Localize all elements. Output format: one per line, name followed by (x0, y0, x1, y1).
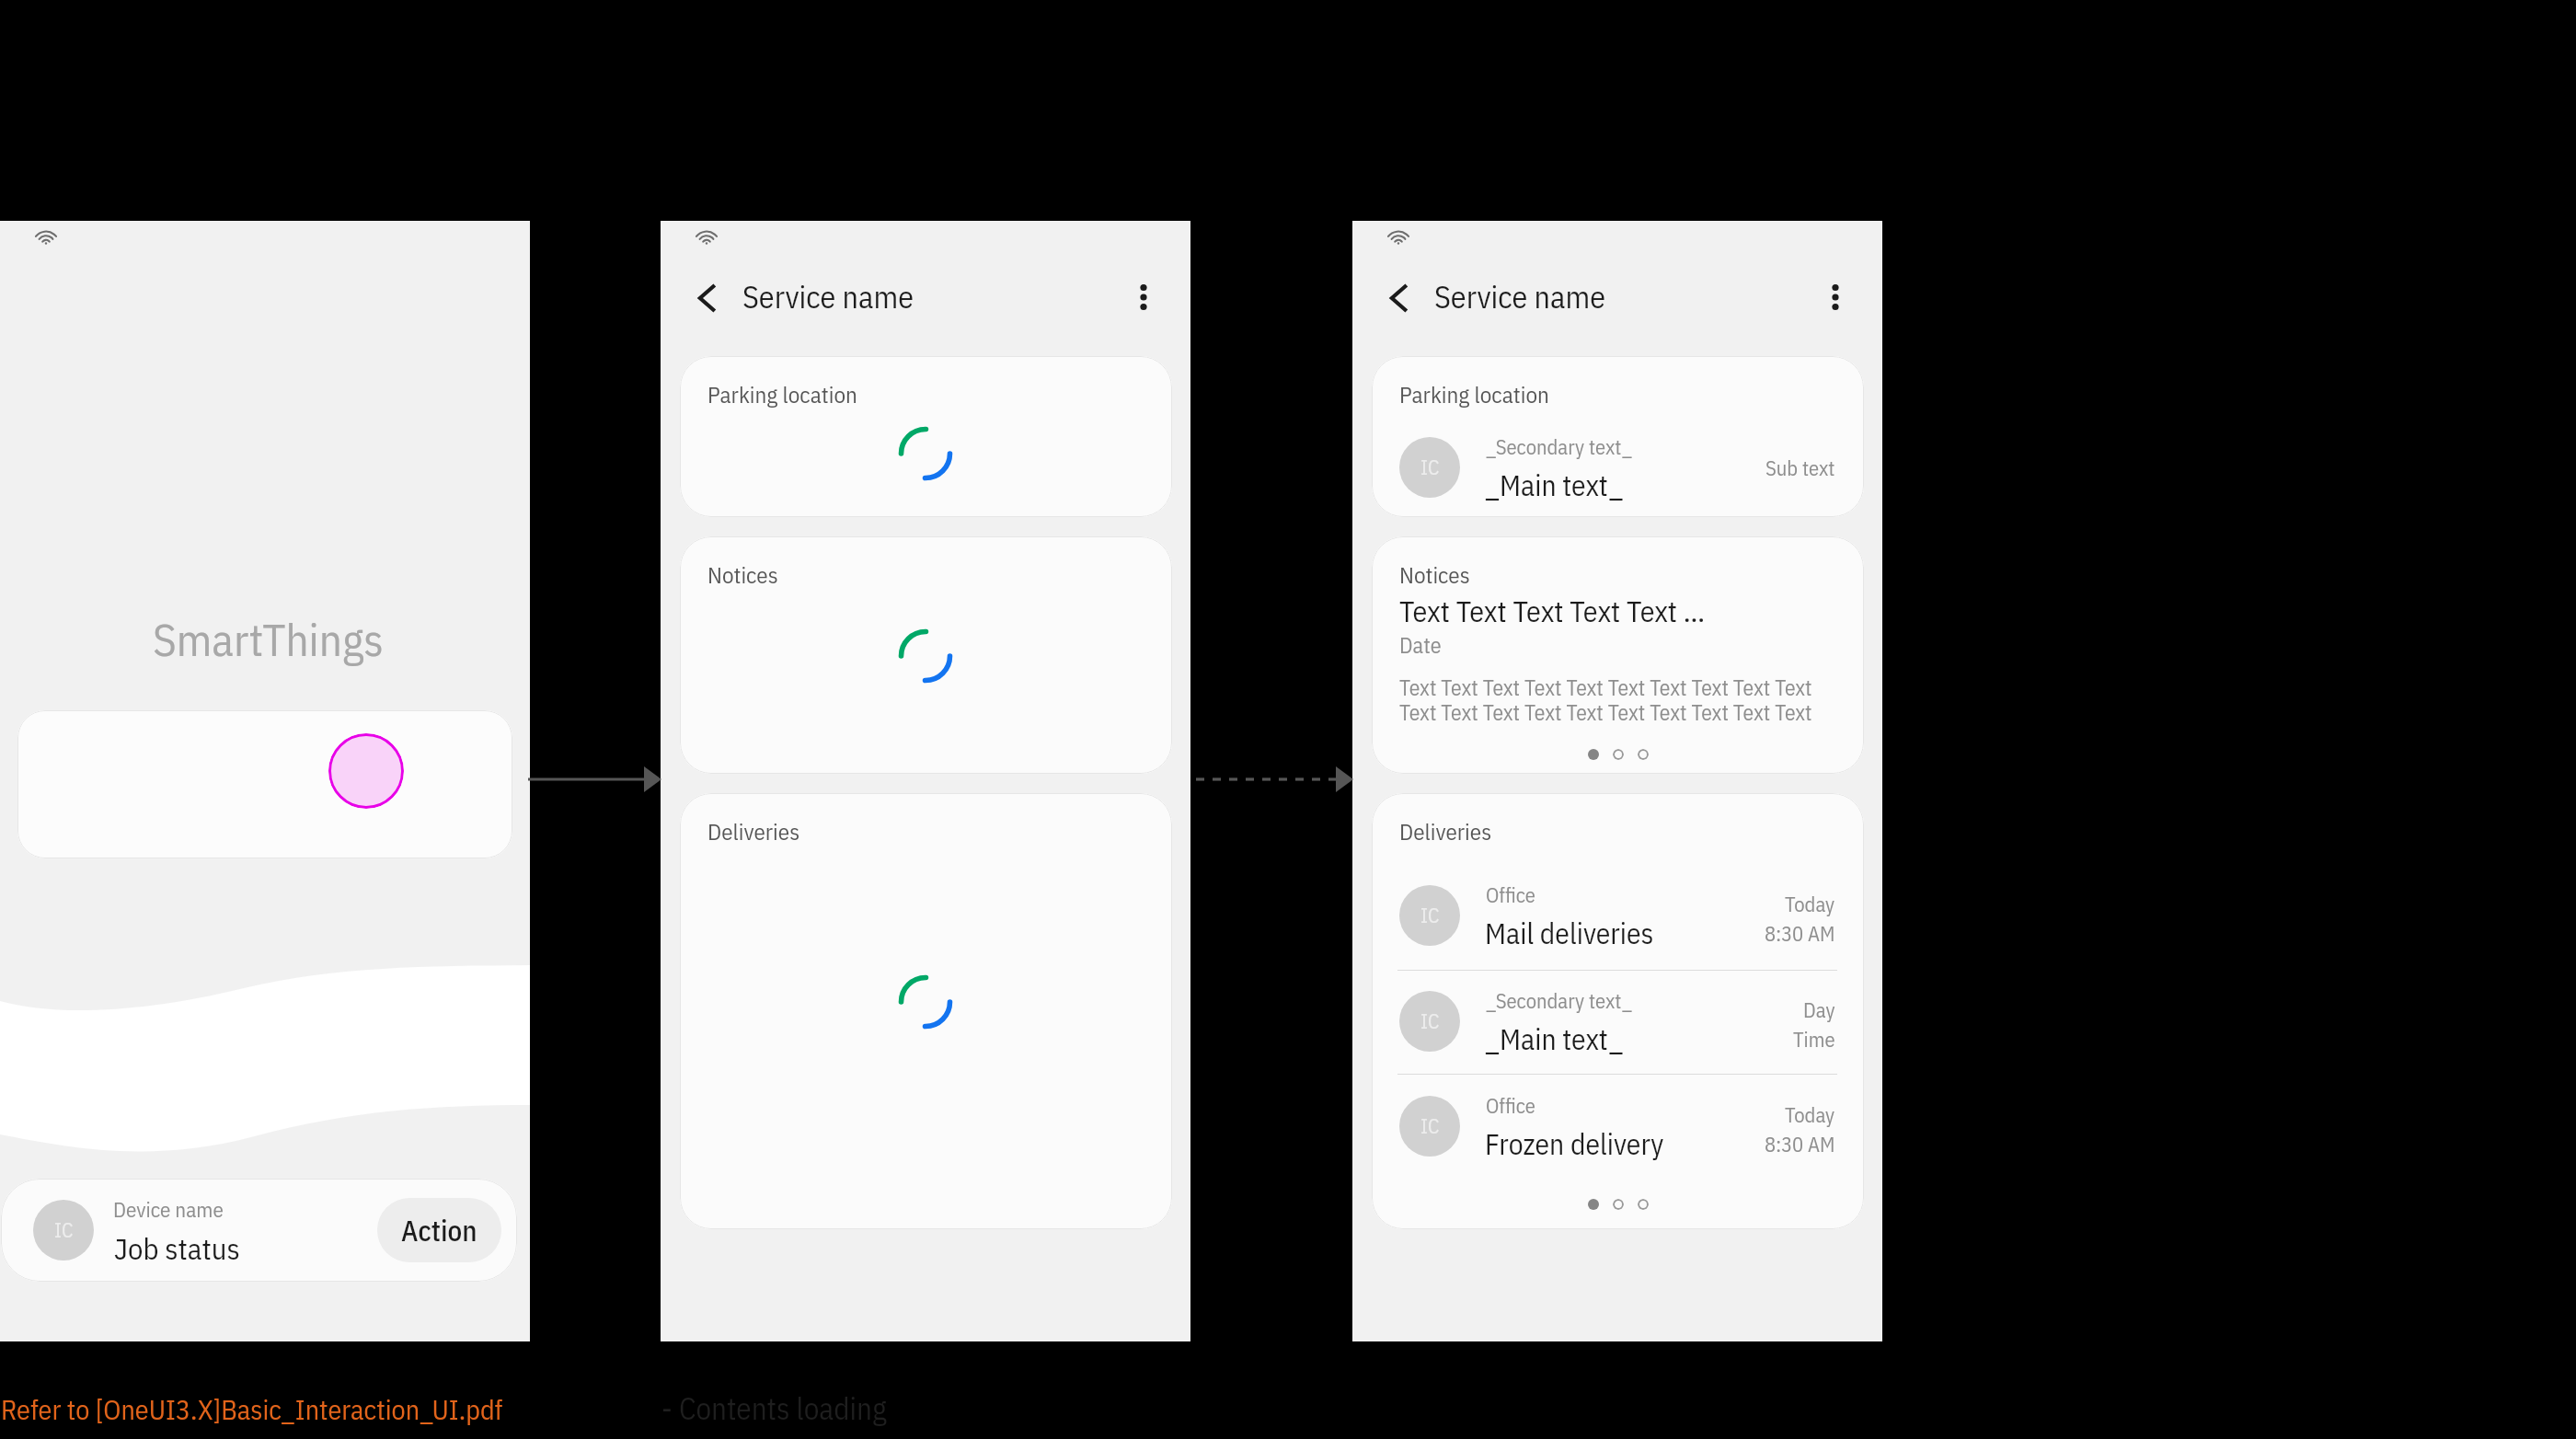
staticText: Sub text (1765, 455, 1835, 481)
button[interactable]: Action (377, 1198, 501, 1262)
button[interactable]: Notices (1372, 536, 1864, 774)
staticText: _Main text_ (1485, 466, 1624, 504)
staticText: Day (1803, 996, 1835, 1023)
staticText: Notices (707, 559, 778, 590)
staticText: Parking location (707, 379, 857, 409)
staticText: IC (1420, 1007, 1440, 1034)
button[interactable]: Deliveries (680, 793, 1172, 1229)
staticText: Refer to [OneUI3.X]Basic_Interaction_UI.… (1, 1391, 503, 1427)
staticText: Mail deliveries (1485, 915, 1654, 952)
staticText: - Contents loading (661, 1388, 887, 1428)
button[interactable]: Back (679, 269, 738, 328)
staticText: Job status (114, 1229, 240, 1268)
staticText: _Secondary text_ (1486, 433, 1633, 460)
staticText: Parking location (1399, 379, 1549, 409)
button[interactable]: IC (1372, 972, 1864, 1071)
staticText: Today (1785, 1101, 1835, 1128)
staticText: Action (401, 1212, 477, 1249)
staticText: SmartThings (153, 610, 384, 669)
staticText: Service name (742, 276, 914, 317)
staticText: Text Text Text Text Text Text Text Text … (1399, 673, 1823, 726)
button[interactable]: Back (1371, 269, 1430, 328)
button[interactable] (17, 710, 512, 858)
button[interactable]: Parking location (680, 356, 1172, 517)
button[interactable]: Deliveries (1372, 793, 1864, 1229)
staticText: _Main text_ (1485, 1020, 1624, 1058)
staticText: 8:30 AM (1765, 920, 1835, 947)
staticText: Time (1793, 1026, 1835, 1053)
staticText: Service name (1434, 276, 1606, 317)
staticText: IC (1420, 902, 1440, 928)
staticText: Deliveries (707, 816, 800, 846)
staticText: Date (1399, 630, 1442, 659)
button[interactable]: More options (1114, 268, 1173, 327)
staticText: 8:30 AM (1765, 1131, 1835, 1157)
staticText: IC (54, 1216, 74, 1243)
staticText: Device name (113, 1195, 224, 1223)
staticText: Office (1486, 881, 1535, 908)
staticText: Today (1785, 891, 1835, 917)
button[interactable]: IC (1372, 1076, 1864, 1176)
staticText: Deliveries (1399, 816, 1492, 846)
staticText: Office (1486, 1092, 1535, 1119)
button[interactable]: IC (1, 1179, 517, 1282)
staticText: IC (1420, 1112, 1440, 1139)
button[interactable]: Parking location (1372, 356, 1864, 517)
staticText: Notices (1399, 559, 1470, 590)
staticText: IC (1420, 454, 1440, 480)
staticText: _Secondary text_ (1486, 987, 1633, 1014)
staticText: Frozen delivery (1485, 1125, 1664, 1163)
button[interactable]: Notices (680, 536, 1172, 774)
button[interactable]: More options (1806, 268, 1865, 327)
staticText: Text Text Text Text Text … (1399, 592, 1706, 630)
button[interactable]: IC (1372, 866, 1864, 965)
